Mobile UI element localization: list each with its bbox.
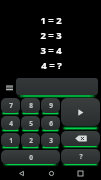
staticText: 4 — [9, 119, 13, 128]
button[interactable]: Hint — [61, 149, 100, 164]
button[interactable]: Submit — [61, 98, 100, 126]
staticText: 8 — [29, 101, 33, 110]
staticText: 7 — [9, 101, 13, 110]
staticText: 2 = 3 — [40, 29, 62, 42]
staticText: 3 — [49, 136, 53, 145]
staticText: 0 — [29, 153, 33, 162]
button[interactable]: 0 — [1, 150, 60, 164]
button[interactable]: Menu — [2, 80, 16, 96]
staticText: 1 — [9, 136, 13, 145]
button[interactable]: 6 — [41, 116, 60, 130]
button[interactable]: 8 — [21, 98, 40, 113]
staticText: 4 = ? — [41, 59, 62, 72]
button[interactable]: Recents — [72, 167, 88, 180]
button[interactable]: 7 — [1, 98, 20, 113]
button[interactable]: 1 — [1, 133, 20, 147]
button[interactable]: 5 — [21, 116, 40, 130]
button[interactable]: Back — [13, 167, 29, 180]
button[interactable]: Home — [43, 167, 59, 180]
staticText: 5 — [29, 119, 33, 128]
button[interactable]: Answer input — [16, 78, 98, 95]
staticText: 2 — [29, 136, 33, 145]
button[interactable]: 2 — [21, 133, 40, 147]
button[interactable]: 9 — [41, 98, 60, 113]
button[interactable]: Backspace — [61, 131, 100, 146]
staticText: ? — [79, 152, 83, 161]
staticText: 6 — [49, 119, 53, 128]
staticText: 1 = 2 — [40, 14, 62, 27]
staticText: 9 — [49, 101, 53, 110]
button[interactable]: 3 — [41, 133, 60, 147]
button[interactable]: 4 — [1, 116, 20, 130]
staticText: 3 = 4 — [40, 44, 62, 57]
